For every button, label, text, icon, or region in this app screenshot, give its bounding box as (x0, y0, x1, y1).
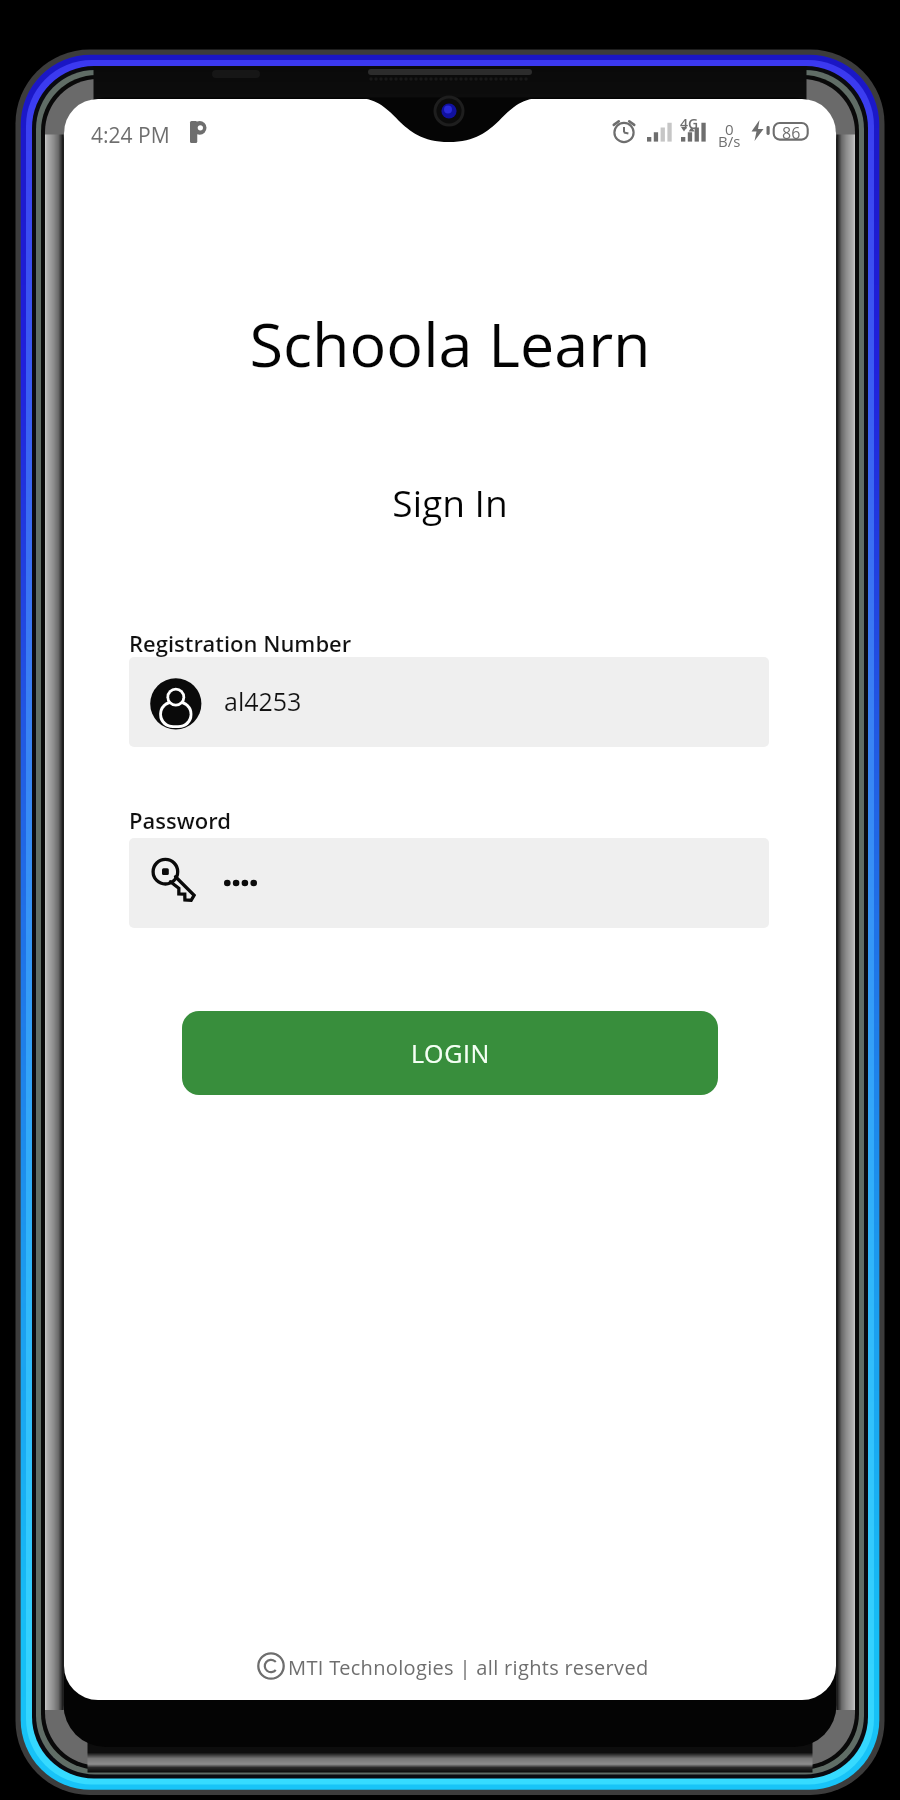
staticText: Password (129, 805, 231, 835)
staticText: al4253 (224, 684, 302, 718)
other: App notification (190, 121, 212, 143)
staticText: Sign In (64, 477, 836, 527)
staticText: B/s (718, 131, 741, 151)
other: Alarm set (609, 117, 639, 147)
button[interactable]: LOGIN (182, 1011, 718, 1095)
staticText: MTI Technologies | all rights reserved (288, 1654, 649, 1681)
staticText: 4G (680, 114, 699, 133)
staticText: 0 (725, 119, 734, 139)
staticText: 86 (782, 122, 801, 144)
other: Signal strength (647, 118, 677, 144)
button[interactable]: Password field (129, 838, 769, 928)
staticText: LOGIN (411, 1036, 490, 1070)
other: 4G mobile data (681, 118, 711, 144)
staticText: Schoola Learn (64, 302, 836, 385)
other: Battery 86 percent, charging (750, 118, 836, 146)
staticText: 4:24 PM (91, 121, 170, 150)
staticText: Registration Number (129, 628, 352, 658)
button[interactable]: Registration Number field (129, 657, 769, 747)
